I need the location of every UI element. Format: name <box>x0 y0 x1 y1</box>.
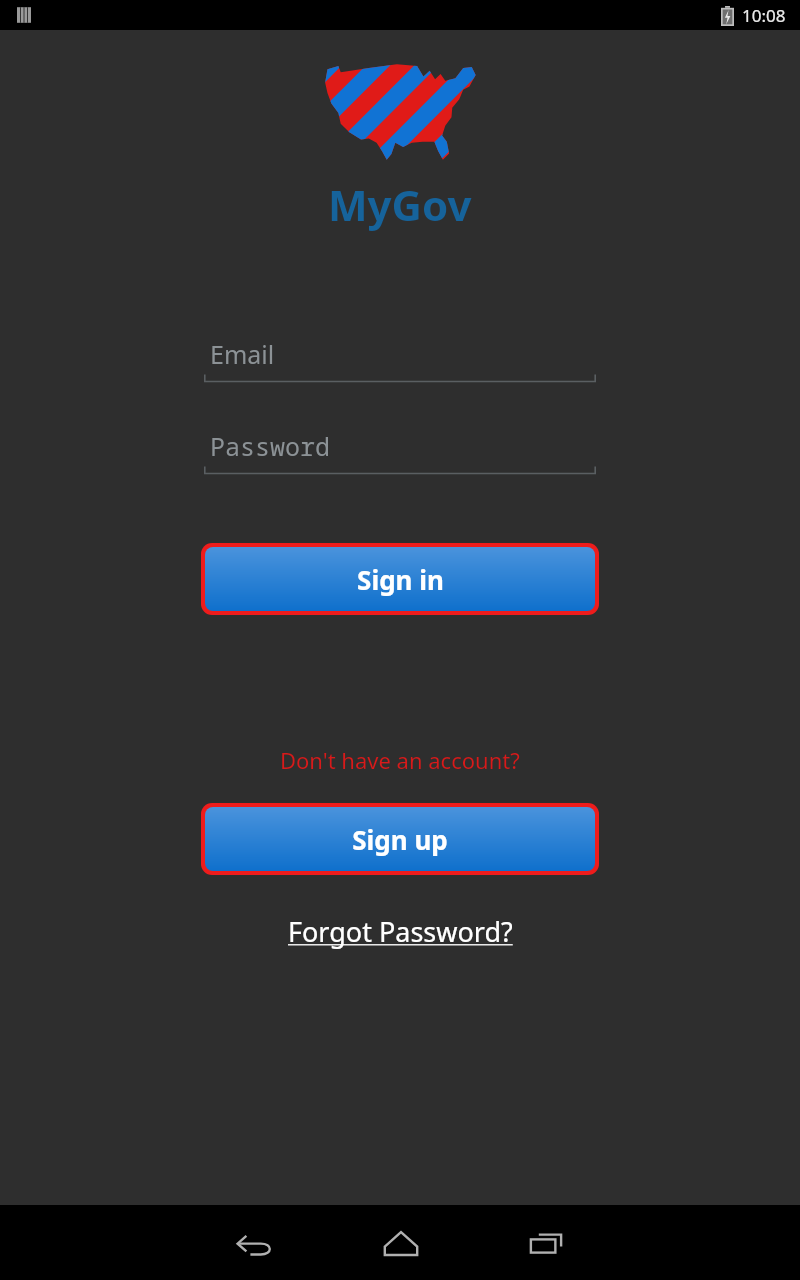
staticText: Forgot Password? <box>288 913 513 950</box>
staticText: Password <box>210 429 331 463</box>
button[interactable]: Don't have an account? <box>272 741 528 779</box>
staticText: Email <box>210 337 275 371</box>
button[interactable]: Back <box>183 1205 328 1280</box>
button[interactable]: Email <box>204 337 596 383</box>
button[interactable]: Sign up <box>201 803 599 875</box>
staticText: Sign up <box>352 822 448 857</box>
button[interactable]: Sign in <box>201 543 599 615</box>
staticText: 10:08 <box>742 4 786 27</box>
button[interactable]: Password <box>204 429 596 475</box>
button[interactable]: Home <box>328 1205 473 1280</box>
staticText: Don't have an account? <box>280 745 520 775</box>
staticText: MyGov <box>328 176 472 233</box>
other: MyGov logo <box>322 58 478 164</box>
staticText: Sign in <box>357 562 444 597</box>
button[interactable]: Recent apps <box>473 1205 618 1280</box>
button[interactable]: Forgot Password? <box>278 909 523 954</box>
